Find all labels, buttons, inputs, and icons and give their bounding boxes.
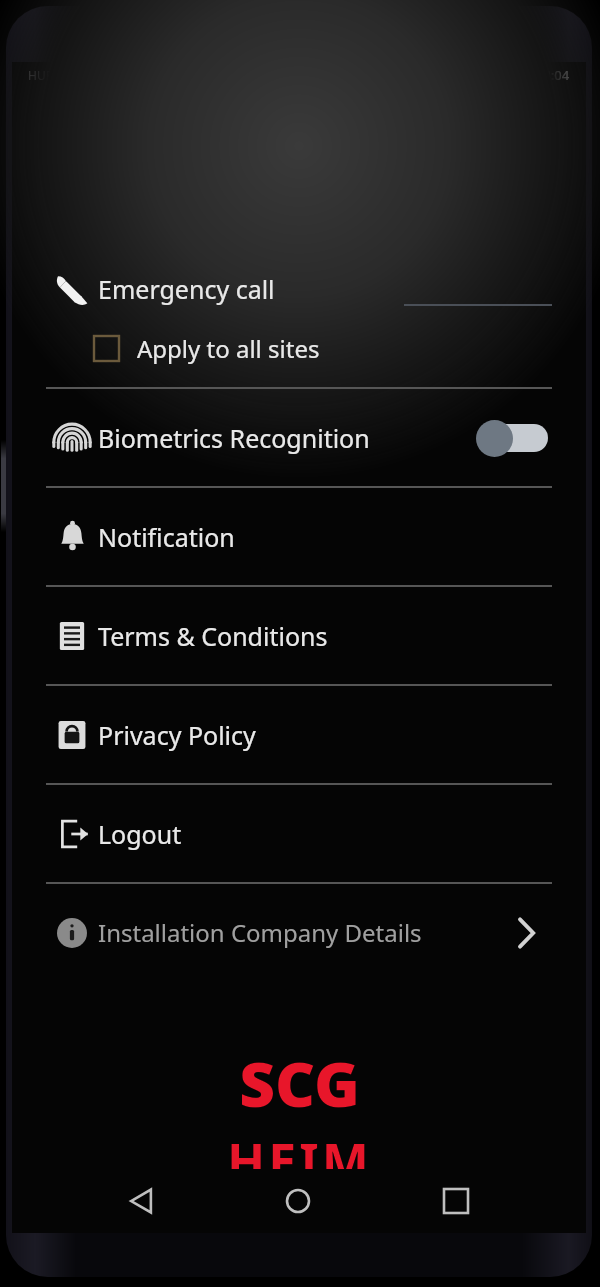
staticText: Privacy Policy [98,718,256,752]
staticText: SCG [239,1041,360,1125]
staticText: 13:04 [536,66,570,84]
button[interactable]: Privacy Policy [46,686,552,783]
button[interactable]: Biometrics toggle [476,416,552,460]
button[interactable]: Apply to all sites [46,320,552,376]
staticText: Emergency call [98,272,275,306]
staticText: Notification [98,520,235,554]
staticText: HEIM [227,1127,372,1169]
button[interactable]: Open installation company details [500,907,552,959]
staticText: SYSTEM SETTINGS [228,110,442,144]
staticText: HUE-H [28,67,66,83]
button[interactable]: Notification [46,488,552,585]
button[interactable]: Recent apps [428,1173,484,1229]
staticText: Biometrics Recognition [98,421,370,455]
button[interactable]: Emergency call [46,258,552,320]
button[interactable] [404,272,552,306]
staticText: Logout [98,817,182,851]
staticText: Installation Company Details [98,916,422,949]
button[interactable]: Terms & Conditions [46,587,552,684]
staticText: Terms & Conditions [98,619,328,653]
staticText: Apply to all sites [137,332,320,365]
button[interactable]: Biometrics Recognition [46,389,552,486]
button[interactable]: Installation Company Details [46,884,552,981]
button[interactable]: Back [113,1173,169,1229]
button[interactable]: Home [270,1173,326,1229]
button[interactable]: Logout [46,785,552,882]
